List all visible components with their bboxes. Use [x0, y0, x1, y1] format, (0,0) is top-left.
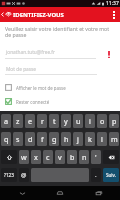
button[interactable]: f — [37, 132, 47, 146]
staticText: z — [16, 116, 20, 126]
button[interactable]: i — [85, 114, 95, 128]
button[interactable]: . — [91, 168, 101, 182]
staticText: Suiv. — [106, 172, 116, 178]
button[interactable]: Home — [43, 186, 77, 200]
staticText: u — [76, 116, 81, 126]
staticText: b — [70, 152, 75, 162]
button[interactable]: b — [67, 150, 77, 164]
button[interactable]: t — [49, 114, 59, 128]
button[interactable]: Shift — [1, 150, 17, 164]
button[interactable]: a — [1, 114, 11, 128]
staticText: v — [58, 152, 62, 162]
button[interactable]: Suiv. — [103, 168, 119, 182]
button[interactable]: g — [49, 132, 59, 146]
staticText: jonathan.tutu@free.fr — [6, 49, 56, 56]
button[interactable]: d — [25, 132, 35, 146]
button[interactable]: q — [1, 132, 11, 146]
staticText: s — [16, 134, 20, 144]
staticText: g — [52, 134, 57, 144]
staticText: @ — [21, 171, 27, 179]
button[interactable]: @ — [19, 168, 29, 182]
button[interactable]: n — [79, 150, 89, 164]
button[interactable]: s — [13, 132, 23, 146]
button[interactable]: Back — [5, 186, 39, 200]
staticText: 11:37 — [106, 0, 119, 7]
button[interactable]: c — [43, 150, 53, 164]
staticText: Veuillez saisir votre identifiant et vot… — [5, 25, 112, 39]
staticText: Afficher le mot de passe — [16, 85, 66, 91]
staticText: o — [100, 116, 105, 126]
button[interactable]: l — [97, 132, 107, 146]
staticText: h — [64, 134, 69, 144]
staticText: . — [95, 171, 97, 179]
button[interactable]: Navigate up — [0, 7, 5, 22]
staticText: Mot de passe — [6, 66, 37, 73]
staticText: IDENTIFIEZ-VOUS — [13, 11, 64, 19]
staticText: i — [89, 116, 91, 126]
staticText: Rester connecté — [16, 99, 50, 105]
staticText: ' — [95, 152, 97, 162]
button[interactable]: Afficher le mot de passe — [0, 83, 120, 92]
staticText: f — [41, 134, 44, 144]
staticText: y — [64, 116, 68, 126]
staticText: p — [112, 116, 117, 126]
staticText: w — [21, 152, 27, 162]
button[interactable]: h — [61, 132, 71, 146]
button[interactable]: y — [61, 114, 71, 128]
button[interactable]: ?123 — [1, 168, 17, 182]
staticText: c — [46, 152, 50, 162]
button[interactable]: e — [25, 114, 35, 128]
button[interactable]: ' — [91, 150, 101, 164]
button[interactable]: v — [55, 150, 65, 164]
button[interactable]: m — [109, 132, 119, 146]
staticText: a — [4, 116, 9, 126]
button[interactable]: Recent apps — [82, 186, 116, 200]
staticText: j — [77, 134, 79, 144]
staticText: k — [88, 134, 92, 144]
staticText: e — [28, 116, 33, 126]
button[interactable]: r — [37, 114, 47, 128]
button[interactable]: More options — [107, 7, 120, 22]
staticText: m — [111, 134, 118, 144]
staticText: ?123 — [4, 172, 14, 178]
button[interactable]: j — [73, 132, 83, 146]
staticText: n — [82, 152, 87, 162]
staticText: r — [41, 116, 44, 126]
button[interactable]: x — [31, 150, 41, 164]
staticText: d — [28, 134, 33, 144]
staticText: t — [53, 116, 56, 126]
button[interactable]: Backspace — [103, 150, 119, 164]
button[interactable]: k — [85, 132, 95, 146]
button[interactable]: z — [13, 114, 23, 128]
button[interactable]: w — [19, 150, 29, 164]
button[interactable]: o — [97, 114, 107, 128]
staticText: x — [34, 152, 38, 162]
button[interactable]: p — [109, 114, 119, 128]
button[interactable]: Rester connecté — [0, 97, 120, 106]
button[interactable]: u — [73, 114, 83, 128]
staticText: q — [4, 134, 9, 144]
staticText: l — [101, 134, 103, 144]
